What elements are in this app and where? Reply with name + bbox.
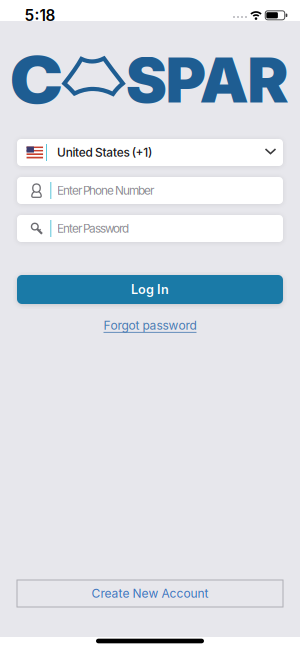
staticText: Enter Phone Number <box>57 183 154 198</box>
button[interactable]: United States (+1) <box>17 139 283 166</box>
staticText: Log In <box>131 282 169 297</box>
button[interactable]: Enter Phone Number <box>17 177 283 204</box>
staticText: Forgot password <box>103 318 196 333</box>
staticText: 5:18 <box>24 6 55 25</box>
staticText: C <box>12 41 60 119</box>
button[interactable]: Log In <box>17 275 283 304</box>
button[interactable]: Enter Password <box>17 215 283 242</box>
staticText: Create New Account <box>91 586 208 601</box>
staticText: SPAR <box>126 42 288 117</box>
button[interactable]: Create New Account <box>17 580 283 607</box>
staticText: Enter Password <box>57 221 129 236</box>
staticText: United States (+1) <box>57 145 152 160</box>
button[interactable]: Forgot password <box>103 318 196 333</box>
